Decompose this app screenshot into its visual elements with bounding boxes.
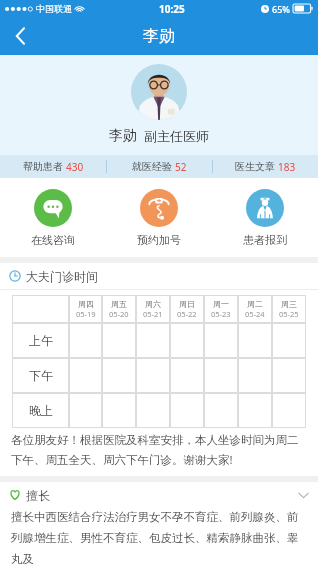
staticText: 05-20 (109, 309, 129, 319)
staticText: 医生文章 (235, 160, 275, 173)
staticText: 周四 (78, 299, 94, 309)
button[interactable]: 就医经验 (107, 155, 212, 178)
staticText: 大夫门诊时间 (26, 269, 98, 284)
staticText: 05-21 (143, 309, 163, 319)
staticText: 周三 (281, 299, 297, 309)
staticText: 周五 (111, 299, 127, 309)
staticText: 下午 (29, 368, 53, 383)
staticText: 430 (66, 160, 84, 174)
staticText: 擅长 (26, 488, 50, 503)
staticText: 李勋 (109, 127, 137, 145)
staticText: 05-25 (279, 309, 299, 319)
staticText: 李勋 (143, 26, 175, 46)
button[interactable]: 在线咨询 (0, 187, 106, 249)
staticText: 上午 (29, 333, 53, 348)
staticText: 周二 (247, 299, 263, 309)
staticText: 副主任医师 (144, 128, 209, 144)
staticText: 65% (272, 3, 290, 15)
button[interactable]: 帮助患者 (0, 155, 106, 178)
staticText: 在线咨询 (31, 233, 75, 247)
staticText: 就医经验 (132, 160, 172, 173)
button[interactable]: 患者报到 (212, 187, 318, 249)
staticText: 晚上 (29, 403, 53, 418)
staticText: 05-19 (76, 309, 96, 319)
staticText: 预约加号 (137, 233, 181, 247)
staticText: 周日 (179, 299, 195, 309)
staticText: 05-23 (211, 309, 231, 319)
staticText: 52 (175, 160, 187, 174)
staticText: 05-22 (177, 309, 197, 319)
staticText: 10:25 (159, 2, 185, 16)
staticText: 05-24 (245, 309, 265, 319)
staticText: 擅长中西医结合疗法治疗男女不孕不育症、前列腺炎、前列腺增生症、男性不育症、包皮过… (11, 510, 307, 566)
button[interactable]: 擅长 (0, 482, 318, 566)
button[interactable]: 医生文章 (213, 155, 318, 178)
staticText: 周一 (213, 299, 229, 309)
button[interactable]: 返回 (0, 17, 40, 55)
staticText: 中国联通 (36, 3, 72, 14)
staticText: 帮助患者 (23, 160, 63, 173)
staticText: 183 (278, 160, 296, 174)
staticText: 各位朋友好！根据医院及科室安排，本人坐诊时间为周二下午、周五全天、周六下午门诊。… (11, 433, 307, 467)
staticText: 患者报到 (243, 233, 287, 247)
staticText: 周六 (145, 299, 161, 309)
button[interactable]: 预约加号 (106, 187, 212, 249)
